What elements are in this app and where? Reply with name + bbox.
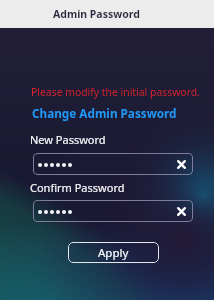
staticText: Apply	[98, 245, 129, 261]
button[interactable]: Clear	[33, 153, 193, 175]
button[interactable]: Clear	[33, 200, 193, 222]
other: Clear	[177, 207, 186, 216]
other: Clear	[177, 160, 186, 169]
staticText: Admin Password	[53, 7, 140, 21]
staticText: Please modify the initial password.	[31, 85, 200, 99]
staticText: Change Admin Password	[32, 105, 177, 121]
staticText: New Password	[30, 132, 106, 147]
staticText: Confirm Password	[30, 180, 125, 195]
button[interactable]: Apply	[68, 242, 159, 263]
